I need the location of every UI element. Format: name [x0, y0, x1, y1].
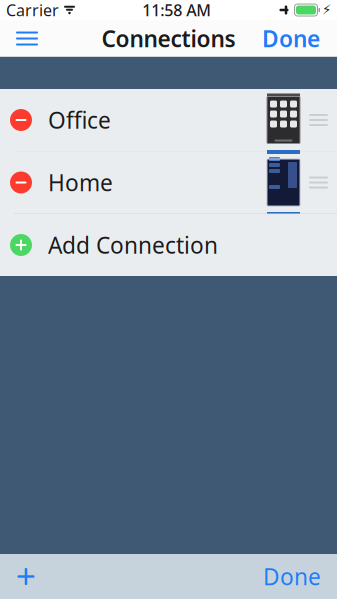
button[interactable]: Add Connection [0, 214, 337, 276]
staticText: Done [262, 23, 320, 53]
staticText: 11:58 AM [142, 0, 211, 21]
staticText: Connections [101, 23, 235, 53]
button[interactable]: Done [250, 20, 332, 57]
button[interactable]: Menu [5, 20, 49, 57]
staticText: Home [48, 167, 113, 197]
button[interactable]: Office [0, 89, 337, 151]
button[interactable]: Done [251, 554, 333, 598]
button[interactable]: Home [0, 151, 337, 213]
button[interactable]: Add [4, 554, 48, 598]
staticText: ⚡︎ [322, 2, 331, 17]
staticText: Carrier [6, 0, 59, 21]
staticText: Done [263, 561, 321, 591]
staticText: Add Connection [48, 230, 218, 260]
staticText: Office [48, 105, 111, 135]
